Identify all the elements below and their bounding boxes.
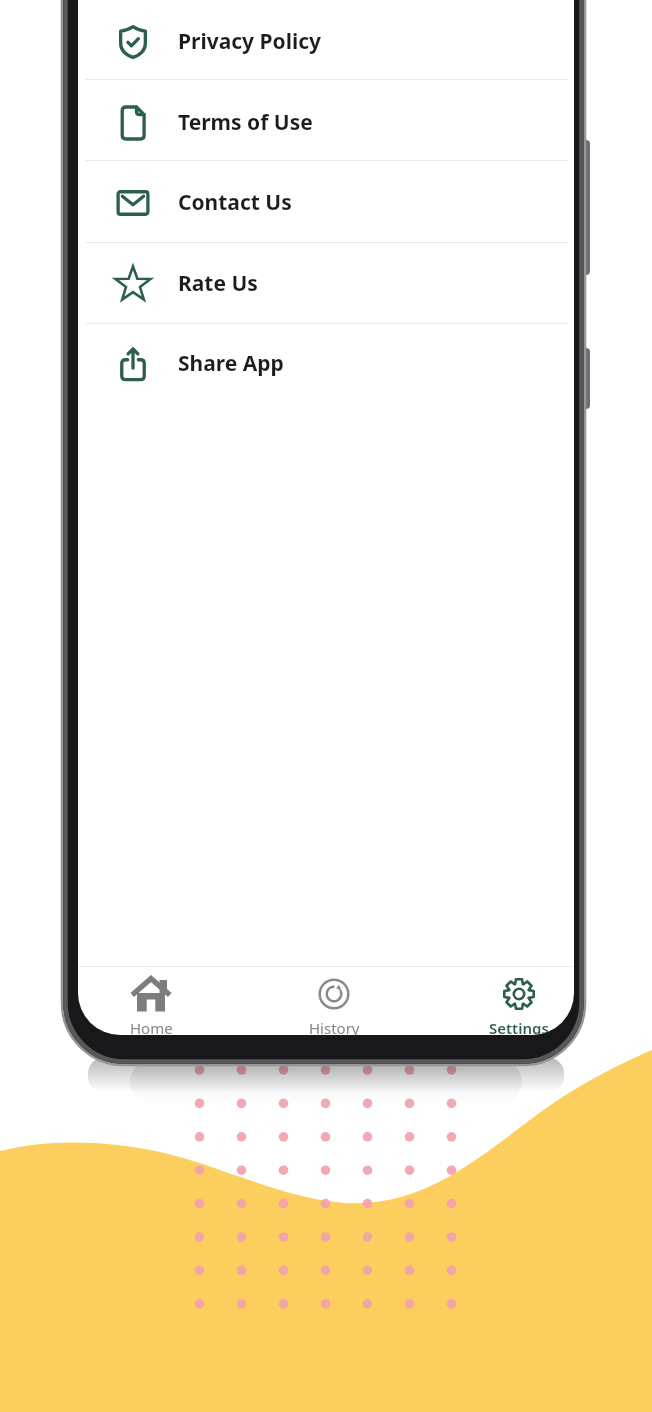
staticText: History	[309, 1018, 360, 1035]
button[interactable]: Privacy Policy	[78, 2, 574, 82]
staticText: Rate Us	[178, 269, 258, 298]
staticText: Share App	[178, 349, 284, 378]
staticText: Contact Us	[178, 188, 292, 217]
staticText: Terms of Use	[178, 108, 313, 137]
button[interactable]: Terms of Use	[78, 83, 574, 163]
button[interactable]: Settings	[473, 974, 565, 1035]
button[interactable]: Rate Us	[78, 244, 574, 324]
button[interactable]: History	[288, 974, 380, 1035]
button[interactable]: Contact Us	[78, 163, 574, 243]
staticText: Settings	[489, 1018, 549, 1035]
button[interactable]: Share App	[78, 324, 574, 404]
staticText: Home	[130, 1018, 173, 1035]
button[interactable]: Home	[105, 974, 197, 1035]
staticText: Privacy Policy	[178, 27, 322, 56]
